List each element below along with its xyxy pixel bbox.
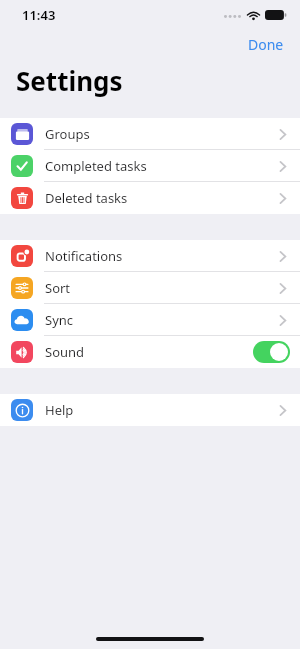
button[interactable]: Sync — [0, 304, 300, 336]
staticText: Groups — [45, 125, 90, 143]
button[interactable]: Done — [232, 30, 300, 58]
staticText: Completed tasks — [45, 157, 147, 175]
button[interactable]: Completed tasks — [0, 150, 300, 182]
staticText: Done — [248, 35, 284, 53]
button[interactable]: Help — [0, 394, 300, 426]
button[interactable]: Deleted tasks — [0, 182, 300, 214]
button[interactable]: Notifications — [0, 240, 300, 272]
staticText: Sync — [45, 311, 74, 329]
staticText: 11:43 — [22, 6, 56, 24]
staticText: Sort — [45, 279, 71, 297]
staticText: Sound — [45, 343, 85, 361]
staticText: Settings — [16, 63, 123, 98]
button[interactable]: Sound on — [253, 341, 290, 363]
staticText: Deleted tasks — [45, 189, 128, 207]
staticText: Help — [45, 401, 74, 419]
button[interactable]: Sound — [0, 336, 300, 368]
staticText: Notifications — [45, 247, 123, 265]
button[interactable]: Sort — [0, 272, 300, 304]
button[interactable]: Groups — [0, 118, 300, 150]
